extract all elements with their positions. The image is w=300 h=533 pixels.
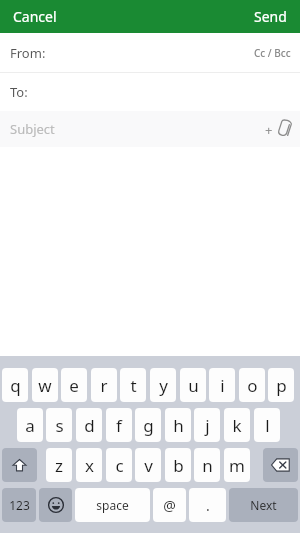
- staticText: c: [115, 454, 124, 477]
- staticText: e: [69, 374, 79, 397]
- button[interactable]: l: [254, 408, 280, 442]
- staticText: k: [232, 414, 242, 437]
- button[interactable]: i: [209, 368, 235, 402]
- button[interactable]: f: [106, 408, 132, 442]
- button[interactable]: t: [120, 368, 146, 402]
- staticText: s: [55, 414, 64, 437]
- staticText: m: [229, 454, 245, 477]
- button[interactable]: 123: [2, 488, 36, 522]
- staticText: p: [276, 374, 287, 397]
- button[interactable]: c: [106, 448, 132, 482]
- button[interactable]: k: [224, 408, 250, 442]
- staticText: y: [159, 374, 168, 397]
- button[interactable]: j: [194, 408, 220, 442]
- staticText: a: [25, 414, 35, 437]
- button[interactable]: Cc / Bcc: [245, 40, 300, 66]
- button[interactable]: b: [165, 448, 191, 482]
- button[interactable]: n: [194, 448, 220, 482]
- staticText: o: [247, 374, 258, 397]
- staticText: d: [84, 414, 95, 437]
- button[interactable]: @: [153, 488, 186, 522]
- button[interactable]: Next: [229, 488, 298, 522]
- button[interactable]: u: [180, 368, 206, 402]
- staticText: j: [205, 414, 210, 437]
- staticText: Cancel: [13, 7, 57, 26]
- button[interactable]: Subject: [0, 111, 300, 147]
- staticText: Send: [254, 7, 287, 26]
- button[interactable]: Shift: [2, 448, 37, 482]
- button[interactable]: Emoji: [39, 488, 72, 522]
- staticText: v: [144, 454, 153, 477]
- button[interactable]: g: [135, 408, 161, 442]
- button[interactable]: y: [150, 368, 176, 402]
- staticText: @: [163, 496, 176, 515]
- staticText: l: [265, 414, 270, 437]
- staticText: n: [202, 454, 213, 477]
- staticText: t: [130, 374, 137, 397]
- button[interactable]: .: [189, 488, 226, 522]
- staticText: g: [143, 414, 154, 437]
- button[interactable]: Add attachment: [257, 120, 300, 139]
- staticText: Cc / Bcc: [254, 46, 291, 60]
- button[interactable]: s: [46, 408, 72, 442]
- staticText: To:: [10, 83, 28, 101]
- staticText: Subject: [10, 120, 55, 138]
- staticText: space: [96, 497, 129, 513]
- button[interactable]: From:: [0, 33, 300, 72]
- staticText: i: [220, 374, 225, 397]
- button[interactable]: m: [224, 448, 250, 482]
- button[interactable]: a: [17, 408, 43, 442]
- staticText: b: [173, 454, 184, 477]
- staticText: .: [206, 496, 210, 515]
- button[interactable]: space: [75, 488, 150, 522]
- button[interactable]: z: [46, 448, 72, 482]
- button[interactable]: Cancel: [0, 1, 70, 32]
- button[interactable]: x: [76, 448, 102, 482]
- button[interactable]: p: [268, 368, 294, 402]
- staticText: h: [173, 414, 184, 437]
- button[interactable]: r: [91, 368, 117, 402]
- staticText: x: [85, 454, 94, 477]
- staticText: z: [55, 454, 63, 477]
- button[interactable]: Send: [241, 1, 300, 32]
- staticText: Next: [250, 497, 277, 513]
- button[interactable]: e: [61, 368, 87, 402]
- button[interactable]: h: [165, 408, 191, 442]
- button[interactable]: w: [32, 368, 58, 402]
- button[interactable]: To:: [0, 73, 300, 111]
- staticText: w: [38, 374, 52, 397]
- staticText: q: [10, 374, 21, 397]
- button[interactable]: d: [76, 408, 102, 442]
- staticText: f: [116, 414, 122, 437]
- staticText: 123: [9, 497, 30, 513]
- staticText: From:: [10, 44, 46, 62]
- button[interactable]: v: [135, 448, 161, 482]
- staticText: r: [100, 374, 108, 397]
- staticText: +: [265, 121, 273, 139]
- button[interactable]: Backspace: [263, 448, 298, 482]
- staticText: u: [188, 374, 199, 397]
- button[interactable]: q: [2, 368, 28, 402]
- button[interactable]: o: [239, 368, 265, 402]
